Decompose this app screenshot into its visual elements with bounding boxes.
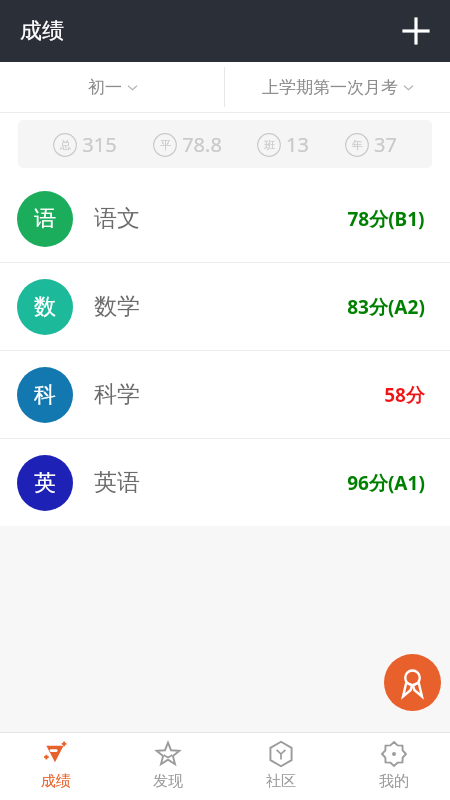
button[interactable]: 我的 xyxy=(337,732,450,800)
button[interactable]: Ranking xyxy=(384,654,441,711)
button[interactable]: 语 xyxy=(0,175,450,262)
staticText: 315 xyxy=(82,131,117,158)
staticText: 83分(A2) xyxy=(347,294,425,320)
staticText: 班 xyxy=(264,138,275,152)
button[interactable]: 上学期第一次月考 xyxy=(225,62,450,112)
staticText: 78.8 xyxy=(182,131,222,158)
button[interactable]: 英 xyxy=(0,439,450,526)
staticText: 发现 xyxy=(153,772,183,791)
button[interactable]: 初一 xyxy=(0,62,224,112)
button[interactable]: 发现 xyxy=(112,732,224,800)
staticText: 社区 xyxy=(266,772,296,791)
button[interactable]: 社区 xyxy=(224,732,337,800)
staticText: 平 xyxy=(160,138,171,152)
staticText: 科 xyxy=(34,381,56,409)
staticText: 英语 xyxy=(94,468,140,497)
button[interactable]: 成绩 xyxy=(0,732,112,800)
staticText: 语文 xyxy=(94,204,140,233)
staticText: 78分(B1) xyxy=(347,206,425,232)
staticText: 37 xyxy=(374,131,397,158)
staticText: 成绩 xyxy=(41,772,71,791)
staticText: 13 xyxy=(286,131,309,158)
staticText: 96分(A1) xyxy=(347,470,425,496)
staticText: 我的 xyxy=(379,772,409,791)
staticText: 58分 xyxy=(384,382,425,408)
button[interactable]: 数 xyxy=(0,263,450,350)
staticText: 成绩 xyxy=(20,17,64,45)
staticText: 数 xyxy=(34,293,56,321)
staticText: 上学期第一次月考 xyxy=(262,77,398,98)
staticText: 年 xyxy=(352,138,363,152)
staticText: 语 xyxy=(34,205,56,233)
button[interactable]: Add xyxy=(399,14,433,48)
staticText: 初一 xyxy=(88,77,122,98)
staticText: 数学 xyxy=(94,292,140,321)
staticText: 英 xyxy=(34,469,56,497)
button[interactable]: 科 xyxy=(0,351,450,438)
staticText: 总 xyxy=(60,138,71,152)
staticText: 科学 xyxy=(94,380,140,409)
